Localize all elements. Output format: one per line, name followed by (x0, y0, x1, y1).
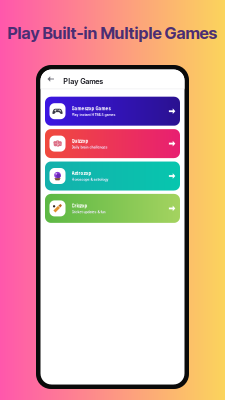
staticText: Horoscope & astrology (71, 177, 108, 182)
staticText: Play Games (63, 77, 103, 86)
staticText: Criczop (71, 202, 87, 209)
staticText: Play instant HTML5 games (71, 112, 115, 117)
button[interactable]: Quizzop (45, 129, 180, 158)
staticText: Play Built-in Multiple Games (7, 23, 217, 43)
button[interactable]: Astrozop (45, 161, 180, 190)
staticText: Astrozop (71, 170, 91, 176)
staticText: Gameszop Games (71, 105, 110, 111)
staticText: Daily brain challenges (71, 144, 107, 149)
staticText: Quizzop (71, 138, 88, 144)
button[interactable]: Gameszop Games (45, 97, 180, 126)
button[interactable]: Back (43, 69, 59, 88)
staticText: Cricket updates & fun (71, 209, 105, 214)
button[interactable]: Criczop (45, 194, 180, 223)
